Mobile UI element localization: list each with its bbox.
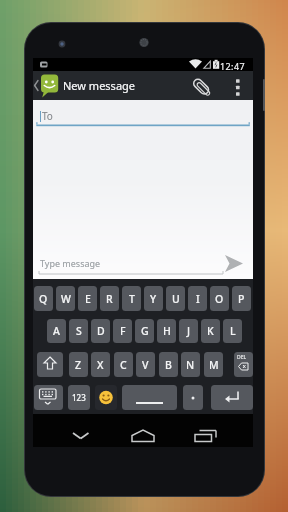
staticText: G <box>141 324 149 338</box>
staticText: U <box>172 292 180 306</box>
button[interactable] <box>122 385 177 410</box>
button[interactable]: E <box>78 286 97 311</box>
staticText: M <box>209 358 219 372</box>
button[interactable]: Q <box>34 286 53 311</box>
button[interactable] <box>33 100 253 128</box>
button[interactable]: B <box>159 352 178 377</box>
staticText: N <box>186 358 195 372</box>
button[interactable]: P <box>232 286 251 311</box>
button[interactable]: V <box>136 352 155 377</box>
button[interactable]: R <box>100 286 119 311</box>
button[interactable]: T <box>122 286 141 311</box>
staticText: DEL <box>237 354 247 361</box>
button[interactable] <box>95 385 117 410</box>
button[interactable] <box>183 385 203 410</box>
button[interactable] <box>63 418 99 444</box>
button[interactable] <box>125 418 161 444</box>
button[interactable]: G <box>135 319 154 343</box>
button[interactable]: D <box>91 319 110 343</box>
button[interactable]: Y <box>144 286 163 311</box>
staticText: B <box>165 358 172 372</box>
staticText: I <box>196 292 200 306</box>
button[interactable]: A <box>47 319 66 343</box>
staticText: H <box>163 324 171 338</box>
staticText: T <box>129 292 135 306</box>
button[interactable]: X <box>91 352 110 377</box>
button[interactable]: U <box>166 286 185 311</box>
staticText: C <box>120 358 127 372</box>
staticText: L <box>230 324 236 338</box>
button[interactable] <box>34 385 63 410</box>
staticText: D <box>97 324 105 338</box>
button[interactable] <box>234 352 253 377</box>
button[interactable]: S <box>69 319 88 343</box>
staticText: F <box>120 324 126 338</box>
button[interactable] <box>33 249 253 279</box>
staticText: X <box>97 358 104 372</box>
staticText: R <box>106 292 113 306</box>
staticText: W <box>61 292 71 306</box>
button[interactable] <box>187 418 223 444</box>
staticText: Q <box>39 292 48 306</box>
button[interactable] <box>33 71 253 100</box>
button[interactable]: L <box>223 319 242 343</box>
staticText: P <box>238 292 245 306</box>
staticText: S <box>76 324 82 338</box>
staticText: J <box>187 324 191 338</box>
button[interactable]: 123 <box>68 385 90 410</box>
button[interactable]: I <box>188 286 207 311</box>
staticText: Y <box>150 292 157 306</box>
button[interactable]: H <box>157 319 176 343</box>
staticText: A <box>53 324 60 338</box>
button[interactable]: M <box>204 352 223 377</box>
button[interactable] <box>211 385 253 410</box>
button[interactable]: Z <box>69 352 88 377</box>
button[interactable]: K <box>201 319 220 343</box>
staticText: O <box>215 292 224 306</box>
button[interactable]: O <box>210 286 229 311</box>
button[interactable]: J <box>179 319 198 343</box>
staticText: 123 <box>72 392 86 403</box>
button[interactable] <box>37 352 63 377</box>
staticText: V <box>142 358 149 372</box>
staticText: E <box>85 292 91 306</box>
staticText: Type message <box>40 257 101 269</box>
button[interactable]: W <box>56 286 75 311</box>
staticText: K <box>207 324 214 338</box>
staticText: Z <box>75 358 82 372</box>
staticText: To <box>42 109 53 123</box>
staticText: 12:47 <box>220 60 246 72</box>
button[interactable]: C <box>114 352 133 377</box>
staticText: New message <box>63 78 136 93</box>
button[interactable]: N <box>181 352 200 377</box>
button[interactable]: F <box>113 319 132 343</box>
